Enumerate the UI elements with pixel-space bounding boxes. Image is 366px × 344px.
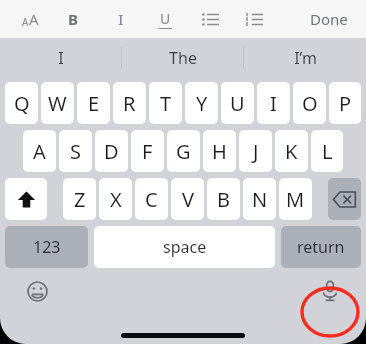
button[interactable]: Done (306, 5, 352, 33)
staticText: O (302, 90, 318, 117)
button[interactable]: P (329, 82, 361, 124)
button[interactable]: Italic (108, 7, 134, 31)
staticText: C (145, 186, 158, 213)
button[interactable]: Dictation (315, 276, 345, 306)
staticText: D (104, 138, 119, 165)
button[interactable]: C (135, 178, 168, 220)
button[interactable]: H (203, 130, 236, 172)
staticText: G (176, 138, 191, 165)
button[interactable]: J (239, 130, 272, 172)
button[interactable]: V (171, 178, 204, 220)
staticText: W (48, 90, 67, 117)
button[interactable]: G (167, 130, 200, 172)
staticText: S (70, 138, 81, 165)
button[interactable]: I (257, 82, 290, 124)
button[interactable]: E (77, 82, 110, 124)
button[interactable]: Q (5, 82, 38, 124)
button[interactable]: W (41, 82, 74, 124)
button[interactable]: K (275, 130, 308, 172)
staticText: E (88, 90, 100, 117)
button[interactable]: return (281, 226, 361, 268)
button[interactable]: Underline (152, 7, 178, 31)
staticText: 123 (33, 236, 61, 258)
button[interactable]: M (279, 178, 312, 220)
button[interactable]: Z (63, 178, 96, 220)
staticText: Done (310, 9, 348, 29)
button[interactable]: The (122, 38, 244, 78)
button[interactable]: Emoji (22, 276, 52, 306)
staticText: J (253, 138, 259, 165)
button[interactable]: L (311, 130, 343, 172)
button[interactable]: D (95, 130, 128, 172)
staticText: P (339, 90, 352, 117)
button[interactable]: T (149, 82, 182, 124)
staticText: N (252, 186, 268, 213)
button[interactable]: 123 (5, 226, 88, 268)
staticText: B (217, 186, 230, 213)
staticText: L (322, 138, 333, 165)
staticText: Q (14, 90, 30, 117)
staticText: B (68, 9, 78, 29)
button[interactable]: Backspace (328, 178, 361, 220)
button[interactable]: F (131, 130, 164, 172)
staticText: A (22, 15, 29, 29)
staticText: U (230, 90, 245, 117)
button[interactable]: R (113, 82, 146, 124)
staticText: A (33, 138, 46, 165)
staticText: F (142, 138, 153, 165)
button[interactable]: I (0, 38, 122, 78)
button[interactable]: Shift (5, 178, 47, 220)
button[interactable]: I’m (244, 38, 366, 78)
button[interactable]: A (23, 130, 56, 172)
staticText: Z (74, 186, 86, 213)
staticText: I’m (294, 47, 317, 69)
staticText: H (212, 138, 227, 165)
staticText: M (286, 186, 305, 213)
staticText: return (297, 236, 345, 258)
button[interactable]: U (221, 82, 254, 124)
button[interactable]: Bulleted list (196, 7, 224, 31)
staticText: K (285, 138, 298, 165)
button[interactable]: N (243, 178, 276, 220)
staticText: Y (196, 90, 208, 117)
staticText: I (58, 47, 64, 69)
staticText: R (123, 90, 136, 117)
button[interactable]: S (59, 130, 92, 172)
button[interactable]: Bold (60, 7, 86, 31)
staticText: space (163, 236, 207, 258)
staticText: I (270, 90, 277, 117)
staticText: I (118, 9, 124, 29)
button[interactable]: B (207, 178, 240, 220)
button[interactable]: Numbered list (240, 7, 268, 31)
button[interactable]: Y (185, 82, 218, 124)
staticText: U (160, 9, 171, 28)
staticText: X (110, 186, 122, 213)
staticText: V (182, 186, 194, 213)
staticText: The (169, 47, 197, 69)
staticText: T (160, 90, 172, 117)
button[interactable]: X (99, 178, 132, 220)
button[interactable]: O (293, 82, 326, 124)
staticText: A (29, 9, 39, 29)
button[interactable]: space (94, 226, 275, 268)
button[interactable]: Text size (14, 7, 46, 31)
